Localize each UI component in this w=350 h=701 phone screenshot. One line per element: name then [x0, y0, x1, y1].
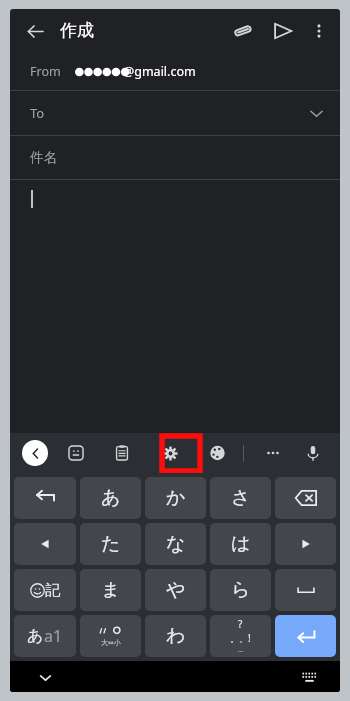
staticText: 。: [230, 633, 239, 644]
staticText: ま: [101, 578, 121, 602]
button[interactable]: Back: [18, 14, 52, 48]
staticText: …: [238, 645, 244, 655]
button[interactable]: か: [145, 477, 206, 519]
button[interactable]: わ: [145, 615, 206, 657]
button[interactable]: More options: [304, 16, 334, 46]
button[interactable]: Dakuten and small: [80, 615, 141, 657]
button[interactable]: Switch keyboard: [296, 664, 322, 690]
button[interactable]: な: [145, 523, 206, 565]
staticText: ら: [231, 578, 251, 602]
button[interactable]: More: [260, 440, 286, 466]
staticText: To: [30, 104, 45, 122]
staticText: た: [101, 532, 121, 556]
button[interactable]: Punctuation: [210, 615, 271, 657]
button[interactable]: ま: [80, 569, 141, 611]
button[interactable]: Voice input: [300, 440, 326, 466]
button[interactable]: Enter: [275, 615, 336, 657]
staticText: a1: [44, 625, 63, 647]
button[interactable]: Attach file: [226, 14, 260, 48]
staticText: From: [30, 63, 61, 80]
button[interactable]: Send: [266, 14, 300, 48]
button[interactable]: Switch input mode: [14, 615, 76, 657]
button[interactable]: Cursor left: [14, 523, 76, 565]
button[interactable]: Emoji and symbols: [14, 569, 76, 611]
staticText: わ: [166, 624, 186, 648]
button[interactable]: Close toolbar: [22, 440, 48, 466]
button[interactable]: [10, 180, 340, 433]
staticText: 作成: [60, 20, 94, 41]
button[interactable]: Hide keyboard: [32, 664, 58, 690]
button[interactable]: あ: [80, 477, 141, 519]
staticText: な: [166, 532, 186, 556]
button[interactable]: Undo: [14, 477, 76, 519]
button[interactable]: From: [10, 52, 340, 90]
staticText: か: [166, 486, 186, 510]
button[interactable]: ら: [210, 569, 271, 611]
button[interactable]: Cursor right: [275, 523, 336, 565]
button[interactable]: は: [210, 523, 271, 565]
button[interactable]: 件名: [10, 136, 340, 179]
staticText: は: [231, 532, 251, 556]
button[interactable]: さ: [210, 477, 271, 519]
button[interactable]: Themes: [205, 440, 231, 466]
button[interactable]: た: [80, 523, 141, 565]
button[interactable]: Backspace: [275, 477, 336, 519]
staticText: 大⇔小: [101, 638, 121, 647]
button[interactable]: Space: [275, 569, 336, 611]
button[interactable]: To: [10, 91, 340, 135]
staticText: さ: [231, 486, 251, 510]
staticText: 件名: [30, 149, 57, 166]
staticText: あ: [27, 626, 44, 646]
staticText: 記: [45, 581, 60, 600]
button[interactable]: Clipboard: [109, 440, 135, 466]
button[interactable]: Stickers: [63, 440, 89, 466]
staticText: 、: [239, 633, 248, 644]
staticText: ?: [238, 617, 243, 631]
button[interactable]: Settings: [157, 440, 183, 466]
staticText: や: [166, 578, 186, 602]
staticText: !: [248, 631, 251, 645]
button[interactable]: や: [145, 569, 206, 611]
staticText: @gmail.com: [123, 63, 196, 80]
staticText: あ: [101, 486, 121, 510]
